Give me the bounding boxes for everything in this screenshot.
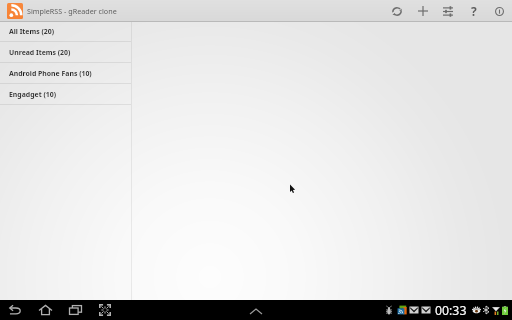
button[interactable]: About (487, 0, 512, 22)
button[interactable]: Back (0, 300, 30, 320)
staticText: All Items (20) (9, 27, 54, 36)
staticText: Android Phone Fans (10) (9, 69, 92, 78)
button[interactable]: Android Phone Fans (10) (0, 63, 131, 83)
button[interactable]: Settings (435, 0, 461, 22)
button[interactable]: Recent apps (60, 300, 90, 320)
staticText: 00:33 (435, 302, 467, 319)
button[interactable]: Help (461, 0, 487, 22)
staticText: ? (471, 3, 477, 19)
button[interactable]: Add (410, 0, 435, 22)
button[interactable]: All Items (20) (0, 21, 131, 41)
button[interactable]: Refresh (384, 0, 410, 22)
button[interactable]: Engadget (10) (0, 84, 131, 104)
staticText: SimpleRSS - gReader clone (27, 6, 117, 16)
button[interactable]: Unread Items (20) (0, 42, 131, 62)
button[interactable]: Screenshot (90, 300, 120, 320)
button[interactable]: Home (30, 300, 60, 320)
staticText: Engadget (10) (9, 90, 56, 99)
staticText: Unread Items (20) (9, 48, 71, 57)
